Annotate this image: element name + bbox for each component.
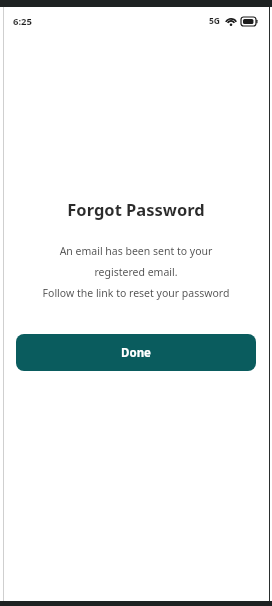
staticText: Done	[121, 345, 151, 361]
staticText: An email has been sent to your registere…	[16, 244, 256, 301]
staticText: 5G	[209, 15, 221, 27]
button[interactable]: Done	[16, 334, 256, 371]
staticText: Forgot Password	[67, 198, 205, 220]
staticText: 6:25	[13, 15, 32, 28]
